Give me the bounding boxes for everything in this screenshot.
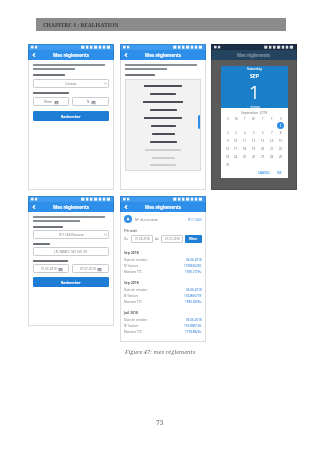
button[interactable] <box>125 130 201 138</box>
staticText: 4 <box>244 131 246 135</box>
button[interactable]: Contrat <box>33 79 109 88</box>
button[interactable]: CANCEL <box>255 170 274 176</box>
button[interactable]: Back <box>120 202 131 212</box>
button[interactable]: 25 <box>240 153 249 161</box>
staticText: 25 <box>243 155 247 159</box>
button[interactable]: Saturday <box>221 66 288 178</box>
button[interactable]: Date de création <box>124 258 202 262</box>
button[interactable]: 30 <box>224 161 232 169</box>
button[interactable]: Account <box>124 215 202 223</box>
button[interactable]: CHAPITRE 4 : REALISATION <box>36 18 286 31</box>
button[interactable]: 24 <box>232 153 240 161</box>
staticText: 7 <box>271 131 273 135</box>
button[interactable]: 1 <box>277 122 284 129</box>
button[interactable]: OK <box>274 170 285 176</box>
staticText: Rechercher <box>61 114 81 119</box>
button[interactable]: 22 <box>276 145 285 153</box>
button[interactable] <box>125 162 201 168</box>
button[interactable]: 27 <box>258 153 267 161</box>
button[interactable]: 11 <box>240 137 249 145</box>
button[interactable]: Back <box>28 196 114 326</box>
staticText: Mes règlements <box>145 52 182 58</box>
staticText: Mes règlements <box>53 52 90 58</box>
button[interactable]: 8 <box>276 129 285 137</box>
button[interactable]: Rechercher <box>33 277 109 287</box>
other: Account <box>124 215 132 223</box>
staticText: 1778.8829u <box>185 330 202 334</box>
button[interactable] <box>125 79 201 171</box>
button[interactable]: 19 <box>249 145 258 153</box>
button[interactable] <box>125 154 201 162</box>
staticText: 11 <box>243 139 247 143</box>
button[interactable]: Back <box>28 50 39 60</box>
button[interactable]: Filtrer <box>185 235 202 243</box>
button[interactable]: Mmm <box>33 97 69 106</box>
button[interactable]: 07-07-2018 <box>72 264 109 273</box>
button[interactable]: 14 <box>267 137 276 145</box>
button[interactable]: Date de création <box>124 318 202 322</box>
button[interactable]: 21 <box>267 145 276 153</box>
button[interactable] <box>125 82 201 90</box>
button[interactable]: Back <box>120 50 131 60</box>
button[interactable]: Montant TTC <box>124 300 202 304</box>
button[interactable]: Back <box>120 196 206 342</box>
button[interactable]: Mes règlements <box>211 44 297 190</box>
staticText: 20 <box>261 147 265 151</box>
button[interactable]: 29 <box>276 153 285 161</box>
button[interactable]: 3 <box>232 129 240 137</box>
button[interactable]: 23 <box>224 153 232 161</box>
staticText: Sep 2018 <box>124 250 139 255</box>
button[interactable]: Montant TTC <box>124 270 202 274</box>
button[interactable]: 6 <box>258 129 267 137</box>
button[interactable]: 2 <box>224 129 232 137</box>
button[interactable]: 9 <box>224 137 232 145</box>
staticText: 14 <box>270 139 274 143</box>
button[interactable]: 26 <box>249 153 258 161</box>
button[interactable]: J.R. PAMCC 941 601 00 <box>33 247 109 256</box>
staticText: 1378636250 <box>184 264 202 268</box>
button[interactable]: Rechercher <box>33 111 109 121</box>
staticText: CANCEL <box>258 171 271 175</box>
button[interactable]: 18 <box>240 145 249 153</box>
button[interactable]: N <box>72 97 109 106</box>
button[interactable]: Back <box>28 202 114 212</box>
button[interactable]: Back <box>28 44 114 190</box>
button[interactable]: 15 <box>276 137 285 145</box>
staticText: 19 <box>252 147 256 151</box>
button[interactable]: N° facture <box>124 294 202 298</box>
button[interactable]: 13 <box>258 137 267 145</box>
button[interactable]: 16 <box>224 145 232 153</box>
staticText: Juil 2018 <box>124 310 138 315</box>
button[interactable]: 01-06-2018 <box>33 264 69 273</box>
button[interactable]: 12 <box>249 137 258 145</box>
button[interactable]: 20 <box>258 145 267 153</box>
button[interactable]: 4 <box>240 129 249 137</box>
button[interactable]: Back <box>120 202 206 212</box>
button[interactable]: Back <box>28 202 39 212</box>
staticText: 1580.2878u <box>185 300 202 304</box>
button[interactable]: Montant TTC <box>124 330 202 334</box>
button[interactable] <box>125 114 201 122</box>
staticText: Rechercher <box>61 280 81 285</box>
button[interactable]: 5 <box>249 129 258 137</box>
button[interactable]: 28 <box>267 153 276 161</box>
button[interactable]: 17 <box>232 145 240 153</box>
button[interactable]: Back <box>120 44 206 190</box>
button[interactable] <box>125 98 201 106</box>
button[interactable]: Date de création <box>124 288 202 292</box>
button[interactable] <box>125 106 201 114</box>
button[interactable]: N° facture <box>124 324 202 328</box>
button[interactable]: N° facture <box>124 264 202 268</box>
button[interactable]: 01-07-2018 <box>161 235 183 243</box>
staticText: R111443 <box>188 217 202 222</box>
button[interactable] <box>125 122 201 130</box>
button[interactable]: 7 <box>267 129 276 137</box>
button[interactable] <box>125 146 201 154</box>
button[interactable] <box>125 90 201 98</box>
button[interactable] <box>125 138 201 146</box>
button[interactable]: 10 <box>232 137 240 145</box>
button[interactable]: Back <box>120 50 206 60</box>
button[interactable]: 01-06-2018 <box>131 235 153 243</box>
button[interactable]: R111443Sxxxxxx <box>33 230 109 239</box>
button[interactable]: Back <box>28 50 114 60</box>
